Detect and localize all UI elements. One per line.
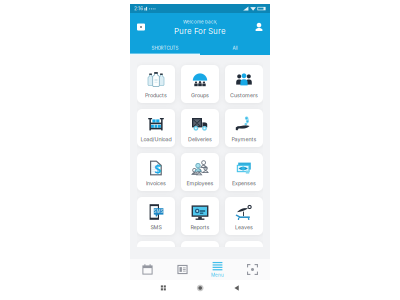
button[interactable]: Leaves — [225, 197, 263, 235]
staticText: Welcome back, — [183, 19, 217, 25]
staticText: Customers — [230, 92, 258, 98]
staticText: Payments — [231, 136, 256, 142]
button[interactable]: Reports — [181, 197, 219, 235]
staticText: SMS — [150, 224, 161, 230]
button[interactable]: Load/Unload — [137, 109, 175, 147]
staticText: Employees — [186, 180, 213, 186]
staticText: Deliveries — [188, 136, 212, 142]
button[interactable]: $ — [137, 153, 175, 191]
staticText: $ — [154, 161, 161, 177]
staticText: Groups — [191, 92, 209, 98]
staticText: 2:16 — [134, 6, 143, 11]
button[interactable]: Scan — [235, 260, 270, 278]
button[interactable]: SMS — [137, 197, 175, 235]
staticText: Menu — [211, 272, 224, 278]
button[interactable]: Deliveries — [181, 109, 219, 147]
staticText: Attendance — [141, 268, 170, 274]
button[interactable]: Calendar — [130, 260, 165, 278]
staticText: Vehicles — [234, 268, 254, 274]
button[interactable]: Products — [137, 65, 175, 103]
button[interactable]: All — [200, 41, 270, 55]
button[interactable]: Payments — [225, 109, 263, 147]
staticText: Load/Unload — [140, 136, 171, 142]
staticText: Invoices — [146, 180, 166, 186]
button[interactable]: Profile — [252, 20, 266, 34]
button[interactable]: Menu — [200, 260, 235, 278]
button[interactable]: Vehicles — [225, 241, 263, 279]
staticText: Products — [145, 92, 167, 98]
button[interactable]: Routes — [181, 241, 219, 279]
button[interactable]: Menu — [134, 20, 148, 34]
button[interactable]: Customers — [225, 65, 263, 103]
button[interactable]: Expenses — [225, 153, 263, 191]
staticText: Reports — [190, 224, 209, 230]
staticText: All — [232, 45, 237, 51]
staticText: Pure For Sure — [174, 26, 226, 36]
button[interactable]: SHORTCUTS — [130, 41, 200, 55]
button[interactable]: Attendance — [137, 241, 175, 279]
staticText: SMS — [154, 209, 164, 214]
staticText: Leaves — [235, 224, 253, 230]
staticText: SHORTCUTS — [151, 45, 178, 51]
button[interactable]: Employees — [181, 153, 219, 191]
button[interactable]: Groups — [181, 65, 219, 103]
staticText: Expenses — [232, 180, 256, 186]
button[interactable]: Cards — [165, 260, 200, 278]
